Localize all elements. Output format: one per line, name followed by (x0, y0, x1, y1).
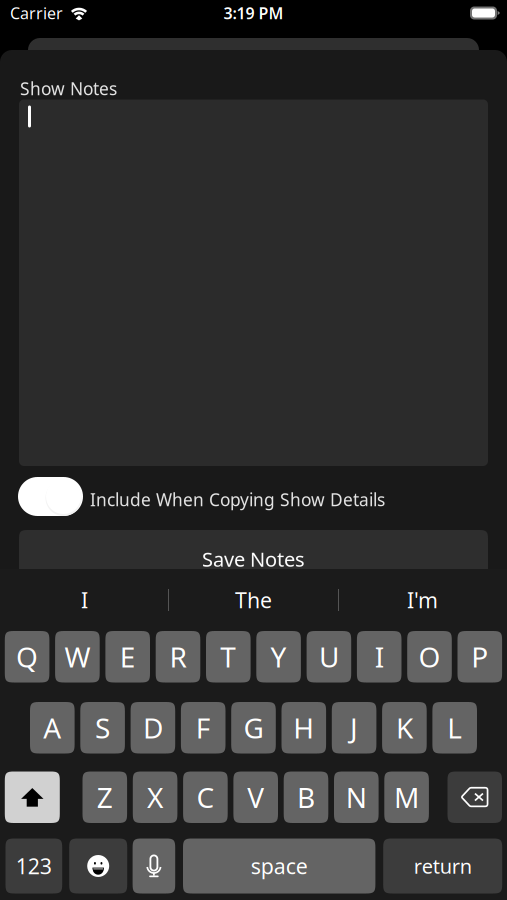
button[interactable]: Delete (447, 771, 502, 823)
staticText: Y (271, 638, 287, 675)
button[interactable]: A (30, 702, 75, 753)
staticText: Q (16, 638, 38, 675)
button[interactable]: T (206, 631, 251, 682)
button[interactable]: C (183, 771, 228, 823)
staticText: N (346, 779, 367, 816)
button[interactable]: 123 (5, 838, 62, 893)
button[interactable]: V (233, 771, 278, 823)
button[interactable]: Emoji (69, 838, 127, 893)
staticText: Include When Copying Show Details (90, 488, 385, 511)
button[interactable]: The (169, 569, 338, 631)
staticText: 123 (16, 852, 52, 880)
staticText: 3:19 PM (223, 2, 283, 24)
staticText: Show Notes (20, 77, 117, 100)
staticText: C (196, 779, 214, 816)
button[interactable]: K (382, 702, 427, 753)
staticText: L (447, 709, 462, 746)
button[interactable]: W (55, 631, 100, 682)
staticText: The (235, 586, 272, 614)
staticText: X (147, 779, 163, 816)
button[interactable]: Y (256, 631, 301, 682)
staticText: O (418, 638, 440, 675)
staticText: A (43, 709, 61, 746)
button[interactable]: space (183, 838, 375, 893)
staticText: I'm (407, 586, 438, 614)
staticText: H (293, 709, 314, 746)
staticText: B (297, 779, 315, 816)
button[interactable]: N (334, 771, 379, 823)
staticText: P (471, 638, 488, 675)
staticText: space (251, 852, 308, 880)
staticText: J (350, 709, 358, 746)
button[interactable]: Q (5, 631, 49, 682)
button[interactable]: U (307, 631, 351, 682)
staticText: F (196, 709, 211, 746)
button[interactable]: I (357, 631, 401, 682)
button[interactable]: B (284, 771, 328, 823)
staticText: U (319, 638, 339, 675)
staticText: D (143, 709, 163, 746)
button[interactable]: H (281, 702, 326, 753)
button[interactable]: X (133, 771, 177, 823)
button[interactable]: return (383, 838, 502, 893)
button[interactable]: G (231, 702, 276, 753)
staticText: G (243, 709, 263, 746)
staticText: Carrier (10, 2, 63, 24)
staticText: W (64, 638, 90, 675)
staticText: return (414, 853, 472, 879)
staticText: M (394, 779, 419, 816)
button[interactable]: Dictate (133, 838, 175, 893)
button[interactable]: I (0, 569, 169, 631)
staticText: T (220, 638, 236, 675)
button[interactable]: I'm (338, 569, 507, 631)
button[interactable]: S (80, 702, 125, 753)
staticText: I (81, 586, 88, 614)
button[interactable]: R (156, 631, 200, 682)
button[interactable]: Include When Copying Show Details (18, 477, 83, 516)
staticText: Z (97, 779, 113, 816)
staticText: I (375, 638, 384, 675)
button[interactable]: J (332, 702, 376, 753)
button[interactable]: L (432, 702, 477, 753)
button[interactable]: Shift (5, 771, 60, 823)
staticText: S (95, 709, 110, 746)
staticText: E (120, 638, 136, 675)
button[interactable]: Save Notes (19, 530, 488, 588)
staticText: R (169, 638, 186, 675)
button[interactable]: E (105, 631, 150, 682)
button[interactable]: F (181, 702, 225, 753)
staticText: Save Notes (202, 546, 305, 572)
button[interactable]: D (131, 702, 175, 753)
button[interactable]: P (457, 631, 502, 682)
button[interactable]: M (384, 771, 429, 823)
button[interactable]: Z (82, 771, 127, 823)
button[interactable]: O (407, 631, 452, 682)
staticText: V (247, 779, 264, 816)
staticText: K (396, 709, 413, 746)
